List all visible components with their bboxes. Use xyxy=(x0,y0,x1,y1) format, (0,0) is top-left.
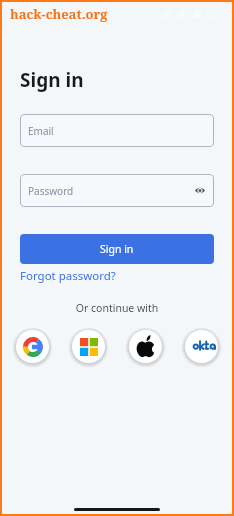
staticText: Or continue with xyxy=(0,301,234,315)
staticText: Forgot password? xyxy=(20,268,116,284)
staticText: Email xyxy=(28,124,54,138)
button[interactable]: Sign in xyxy=(20,234,214,264)
button[interactable]: Sign in with Google xyxy=(13,327,52,366)
button[interactable]: Password xyxy=(20,174,214,207)
staticText: Sign in xyxy=(100,242,134,256)
button[interactable]: Sign in with Apple xyxy=(126,327,165,366)
button[interactable]: Sign in with Microsoft xyxy=(69,327,108,366)
staticText: Password xyxy=(28,184,74,198)
button[interactable]: Email xyxy=(20,114,214,147)
staticText: Sign in xyxy=(20,67,84,93)
staticText: hack-cheat.org xyxy=(10,5,108,23)
button[interactable]: Sign in with Okta xyxy=(182,327,221,366)
button[interactable]: Forgot password? xyxy=(18,265,118,287)
